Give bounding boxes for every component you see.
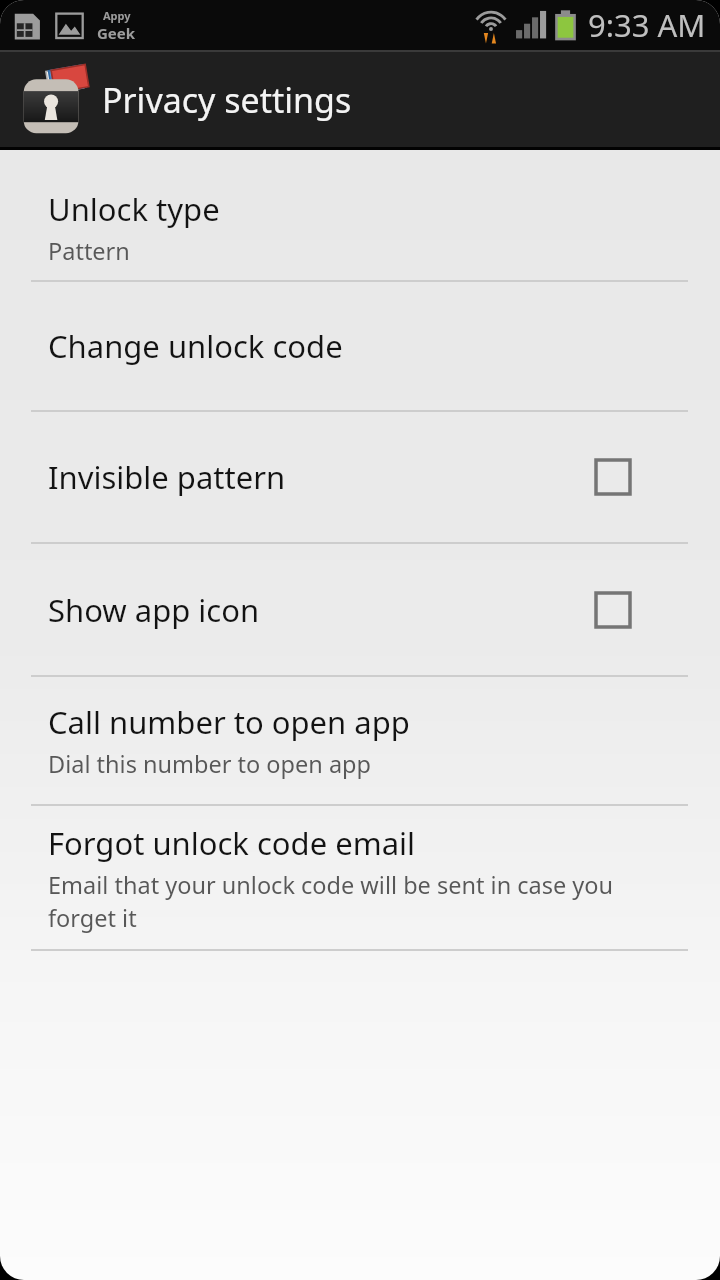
- staticText: Appy: [103, 8, 131, 23]
- staticText: Email that your unlock code will be sent…: [48, 869, 682, 934]
- button[interactable]: Unlock type: [0, 174, 720, 280]
- staticText: Invisible pattern: [48, 456, 286, 498]
- button[interactable]: Privacy settings: [0, 52, 720, 147]
- staticText: Privacy settings: [102, 77, 352, 123]
- staticText: Call number to open app: [48, 701, 410, 743]
- staticText: Pattern: [48, 235, 130, 267]
- button[interactable]: Show app icon: [0, 544, 720, 675]
- staticText: Geek: [97, 23, 136, 43]
- staticText: Forgot unlock code email: [48, 822, 416, 864]
- staticText: Unlock type: [48, 188, 220, 230]
- staticText: Change unlock code: [48, 325, 343, 367]
- button[interactable]: Invisible pattern: [0, 412, 720, 542]
- staticText: Dial this number to open app: [48, 748, 372, 780]
- staticText: 9:33 AM: [588, 4, 706, 46]
- button[interactable]: Forgot unlock code email: [0, 806, 720, 949]
- button[interactable]: Change unlock code: [0, 282, 720, 410]
- button[interactable]: Call number to open app: [0, 677, 720, 804]
- staticText: Show app icon: [48, 589, 260, 631]
